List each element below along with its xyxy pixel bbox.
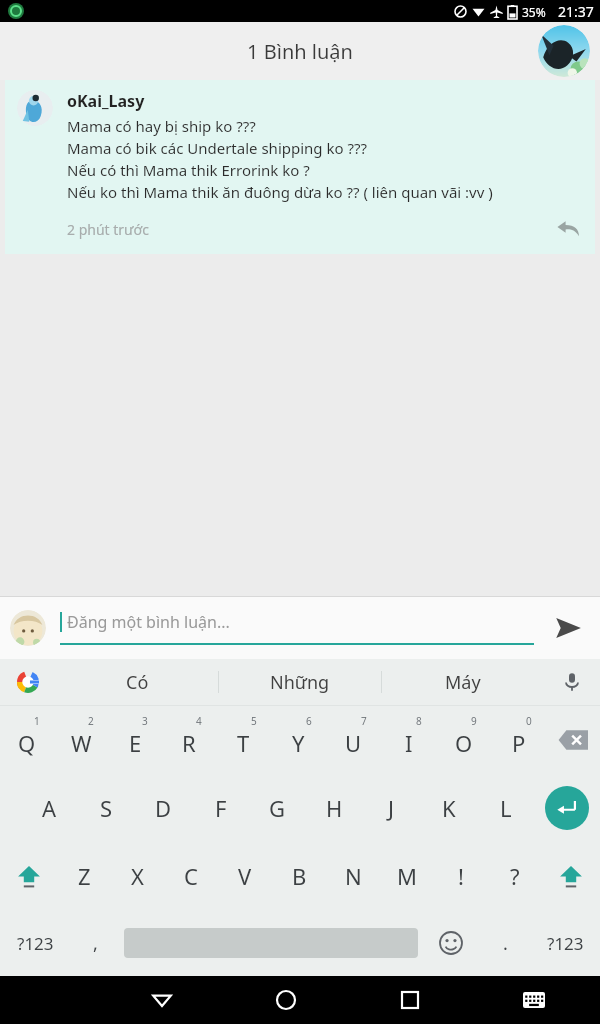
staticText: 2 phút trước xyxy=(67,220,149,239)
button[interactable]: Google xyxy=(0,659,56,705)
button[interactable]: Có xyxy=(56,659,218,705)
button[interactable]: 8 xyxy=(381,706,436,774)
staticText: 5 xyxy=(251,714,257,728)
button[interactable]: Màn hình chính xyxy=(224,976,348,1024)
staticText: I xyxy=(405,728,413,758)
staticText: , xyxy=(93,931,98,956)
button[interactable]: 1 xyxy=(0,706,54,774)
button[interactable]: 2 xyxy=(54,706,108,774)
staticText: C xyxy=(184,861,198,891)
button[interactable]: 9 xyxy=(436,706,491,774)
staticText: V xyxy=(238,861,252,891)
button[interactable]: S xyxy=(78,774,135,842)
staticText: 6 xyxy=(306,714,312,728)
button[interactable]: C xyxy=(164,842,218,910)
staticText: U xyxy=(345,728,362,758)
button[interactable]: 3 xyxy=(108,706,162,774)
button[interactable]: F xyxy=(192,774,249,842)
button[interactable]: Những xyxy=(219,659,381,705)
button[interactable]: A xyxy=(20,774,78,842)
staticText: 8 xyxy=(416,714,422,728)
staticText: Nếu ko thì Mama thik ăn đuông dừa ko ?? … xyxy=(67,182,493,202)
button[interactable]: J xyxy=(363,774,420,842)
button[interactable]: Ảnh đại diện xyxy=(538,25,590,77)
button[interactable]: B xyxy=(272,842,326,910)
staticText: 2 xyxy=(88,714,94,728)
staticText: X xyxy=(131,861,144,891)
staticText: 1 xyxy=(34,714,40,728)
staticText: B xyxy=(292,861,307,891)
button[interactable]: X xyxy=(111,842,164,910)
button[interactable]: Shift xyxy=(542,842,600,910)
staticText: ? xyxy=(510,861,520,891)
button[interactable]: V xyxy=(218,842,272,910)
staticText: Mama có hay bị ship ko ??? xyxy=(67,116,256,136)
button[interactable]: K xyxy=(420,774,477,842)
staticText: G xyxy=(269,793,286,823)
button[interactable]: Đăng một bình luận... xyxy=(60,611,534,645)
staticText: K xyxy=(442,793,456,823)
staticText: 0 xyxy=(526,714,532,728)
staticText: Máy xyxy=(445,670,481,695)
staticText: T xyxy=(237,728,250,758)
button[interactable]: Z xyxy=(58,842,111,910)
button[interactable]: oKai_Lasy xyxy=(5,80,595,254)
staticText: M xyxy=(397,861,417,891)
button[interactable]: Đổi bàn phím xyxy=(472,976,596,1024)
button[interactable]: Biểu tượng cảm xúc xyxy=(422,910,480,976)
button[interactable]: 4 xyxy=(162,706,216,774)
button[interactable]: Ứng dụng gần đây xyxy=(348,976,472,1024)
button[interactable]: N xyxy=(326,842,380,910)
button[interactable]: ?123 xyxy=(530,910,600,976)
staticText: . xyxy=(503,931,508,956)
button[interactable]: Gửi xyxy=(546,606,590,650)
button[interactable]: ?123 xyxy=(0,910,70,976)
staticText: D xyxy=(155,793,172,823)
staticText: Y xyxy=(292,728,305,758)
button[interactable]: Enter xyxy=(534,774,600,842)
button[interactable]: 0 xyxy=(491,706,546,774)
staticText: 35% xyxy=(522,4,546,20)
staticText: ?123 xyxy=(547,932,584,955)
button[interactable]: M xyxy=(380,842,434,910)
staticText: 1 Bình luận xyxy=(247,38,353,65)
staticText: W xyxy=(71,728,92,758)
staticText: A xyxy=(42,793,57,823)
button[interactable]: H xyxy=(306,774,363,842)
staticText: 3 xyxy=(142,714,148,728)
button[interactable]: Quay lại xyxy=(100,976,224,1024)
button[interactable]: , xyxy=(70,910,120,976)
staticText: J xyxy=(388,793,395,823)
staticText: L xyxy=(500,793,512,823)
button[interactable]: 5 xyxy=(216,706,271,774)
staticText: R xyxy=(182,728,196,758)
button[interactable]: 7 xyxy=(326,706,381,774)
button[interactable]: Shift xyxy=(0,842,58,910)
staticText: 4 xyxy=(196,714,202,728)
button[interactable]: . xyxy=(480,910,530,976)
staticText: Mama có bik các Undertale shipping ko ??… xyxy=(67,138,367,158)
staticText: E xyxy=(129,728,142,758)
button[interactable]: ? xyxy=(488,842,542,910)
button[interactable]: Xóa xyxy=(546,706,600,774)
button[interactable]: D xyxy=(135,774,192,842)
button[interactable]: G xyxy=(249,774,306,842)
button[interactable]: Nhập bằng giọng nói xyxy=(544,659,600,705)
staticText: 9 xyxy=(471,714,477,728)
staticText: H xyxy=(326,793,343,823)
staticText: N xyxy=(345,861,362,891)
staticText: Những xyxy=(270,670,330,695)
staticText: O xyxy=(455,728,473,758)
staticText: oKai_Lasy xyxy=(67,90,145,112)
button[interactable]: Máy xyxy=(382,659,544,705)
button[interactable]: L xyxy=(477,774,534,842)
staticText: Có xyxy=(126,670,149,695)
staticText: 7 xyxy=(361,714,367,728)
button[interactable]: Trả lời xyxy=(551,212,585,246)
staticText: P xyxy=(512,728,526,758)
button[interactable]: ! xyxy=(434,842,488,910)
staticText: Đăng một bình luận... xyxy=(67,611,230,633)
staticText: ! xyxy=(458,861,464,891)
button[interactable]: 6 xyxy=(271,706,326,774)
